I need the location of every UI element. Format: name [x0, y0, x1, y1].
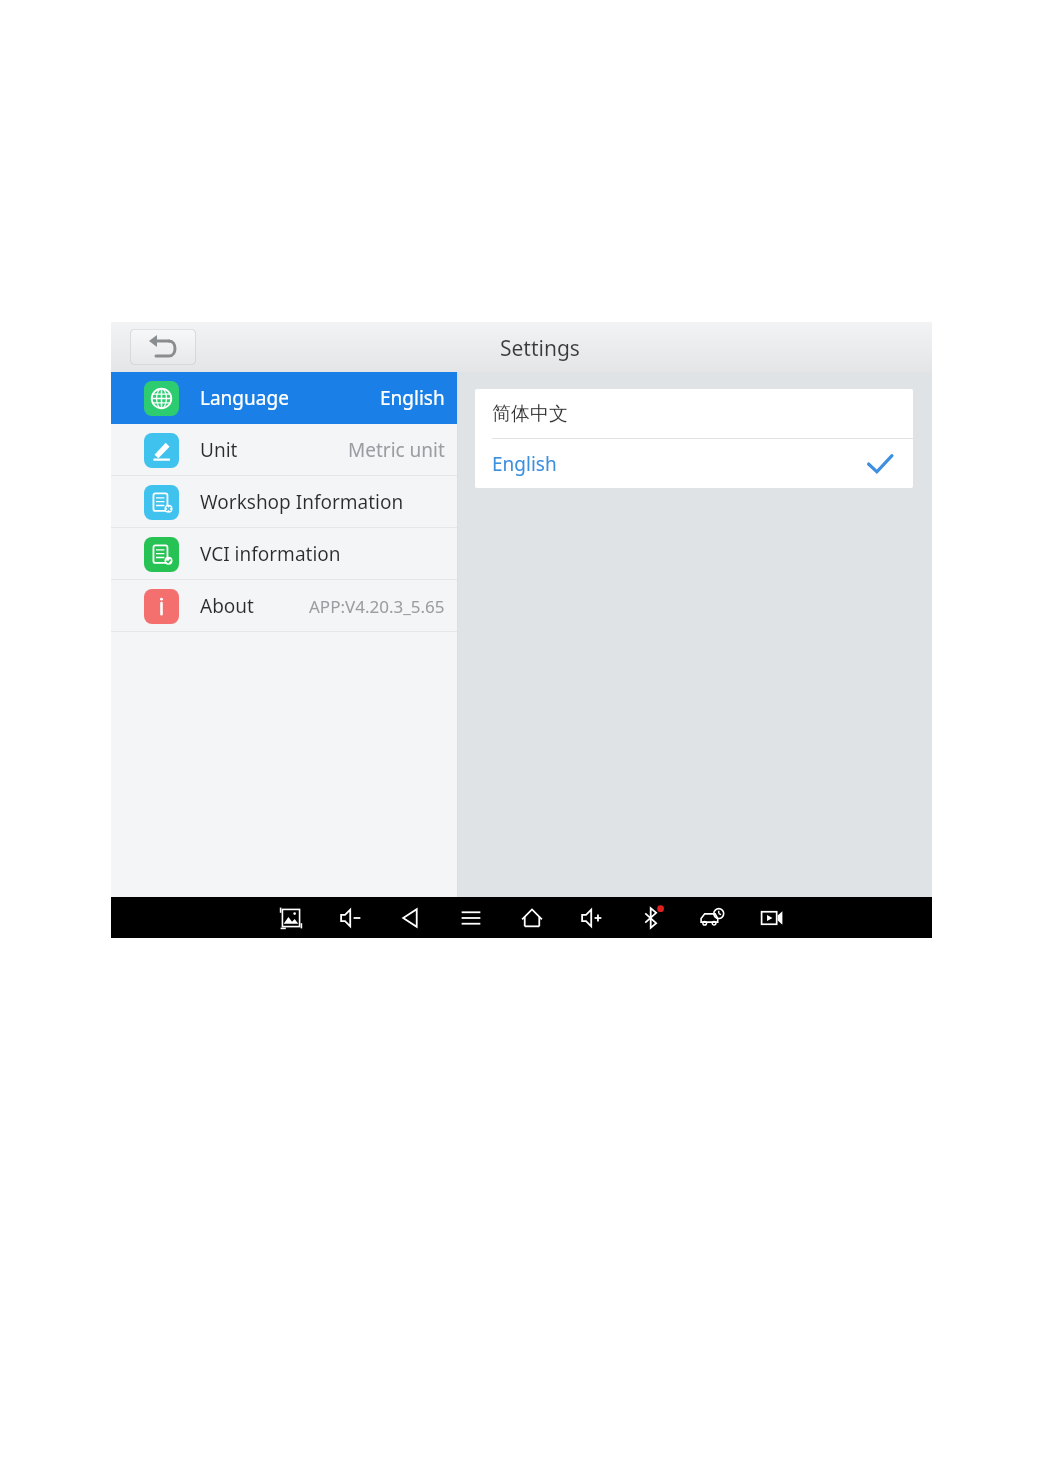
button[interactable]: Home [512, 898, 552, 938]
button[interactable]: English [475, 439, 913, 488]
button[interactable]: Workshop Information [111, 476, 458, 528]
staticText: 简体中文 [492, 402, 568, 426]
button[interactable]: Bluetooth [632, 898, 672, 938]
button[interactable]: Volume up [572, 898, 612, 938]
button[interactable]: Diagnostics [692, 898, 732, 938]
staticText: Settings [500, 334, 580, 363]
staticText: English [380, 385, 445, 411]
button[interactable]: Menu [451, 898, 491, 938]
staticText: Workshop Information [200, 489, 404, 515]
button[interactable]: Back [130, 329, 196, 365]
button[interactable]: Volume down [331, 898, 371, 938]
staticText: Unit [200, 437, 238, 463]
button[interactable]: Language [111, 372, 458, 424]
button[interactable]: Back [391, 898, 431, 938]
staticText: About [200, 593, 254, 619]
button[interactable]: Record [752, 898, 792, 938]
button[interactable]: 简体中文 [475, 389, 913, 438]
button[interactable]: Unit [111, 424, 458, 476]
staticText: Language [200, 385, 289, 411]
button[interactable]: VCI information [111, 528, 458, 580]
staticText: APP:V4.20.3_5.65 [309, 595, 445, 618]
staticText: English [492, 451, 557, 477]
button[interactable]: Screenshot [271, 898, 311, 938]
button[interactable]: About [111, 580, 458, 632]
staticText: VCI information [200, 541, 341, 567]
staticText: Metric unit [348, 437, 445, 463]
